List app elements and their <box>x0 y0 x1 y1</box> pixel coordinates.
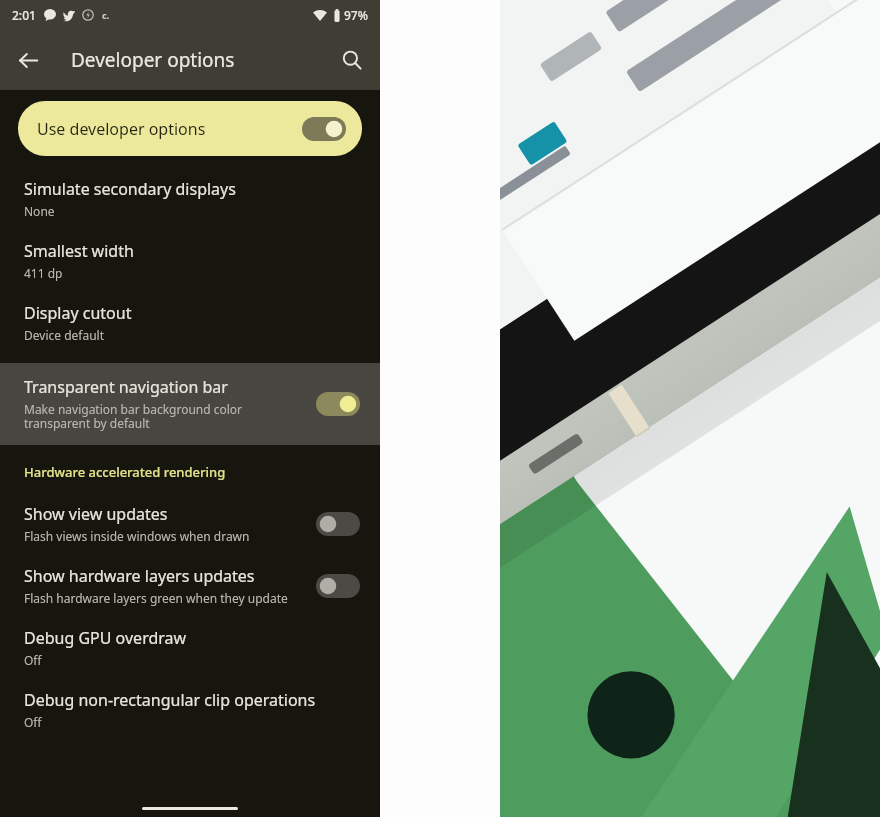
button[interactable]: Show hardware layers updates <box>316 574 360 598</box>
button[interactable]: Simulate secondary displays <box>0 170 380 229</box>
staticText: 411 dp <box>24 265 63 281</box>
staticText: Display cutout <box>24 302 132 324</box>
button[interactable]: Smallest width <box>0 229 380 291</box>
button[interactable]: Transparent navigation bar <box>0 363 380 445</box>
staticText: 2:01 <box>12 7 36 23</box>
staticText: Debug GPU overdraw <box>24 627 187 649</box>
staticText: Transparent navigation bar <box>24 376 228 398</box>
staticText: c. <box>102 9 110 21</box>
button[interactable]: Use developer options <box>18 101 362 156</box>
staticText: Use developer options <box>37 118 302 140</box>
staticText: Off <box>24 714 42 730</box>
staticText: Developer options <box>71 47 235 73</box>
staticText: Device default <box>24 327 104 343</box>
staticText: Off <box>24 652 42 668</box>
button[interactable]: Use developer options <box>302 117 346 141</box>
staticText: None <box>24 203 55 219</box>
staticText: 97% <box>344 7 368 23</box>
button[interactable]: Show view updates <box>0 495 380 554</box>
button[interactable]: Show hardware layers updates <box>0 554 380 616</box>
button[interactable]: Show view updates <box>316 512 360 536</box>
staticText: Hardware accelerated rendering <box>24 463 226 481</box>
staticText: Make navigation bar background color tra… <box>24 401 243 432</box>
staticText: Show view updates <box>24 503 168 525</box>
button[interactable]: Display cutout <box>0 291 380 353</box>
staticText: Debug non-rectangular clip operations <box>24 689 316 711</box>
button[interactable]: Debug non-rectangular clip operations <box>0 678 380 734</box>
staticText: Show hardware layers updates <box>24 565 255 587</box>
staticText: Smallest width <box>24 240 134 262</box>
staticText: Flash views inside windows when drawn <box>24 528 250 544</box>
staticText: Simulate secondary displays <box>24 178 236 200</box>
button[interactable]: Debug GPU overdraw <box>0 616 380 678</box>
button[interactable]: Back <box>6 38 50 82</box>
button[interactable]: Transparent navigation bar <box>316 392 360 416</box>
button[interactable]: Search <box>330 38 374 82</box>
staticText: Flash hardware layers green when they up… <box>24 590 288 606</box>
